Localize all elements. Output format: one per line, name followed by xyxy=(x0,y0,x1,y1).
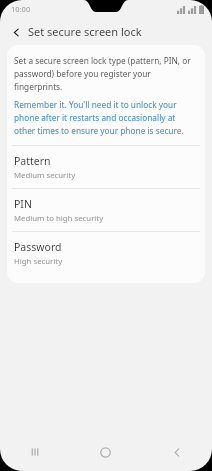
staticText: Pattern xyxy=(14,154,51,168)
staticText: Set a secure screen lock type (pattern, … xyxy=(14,55,198,92)
button[interactable]: Password xyxy=(7,232,205,274)
button[interactable]: Navigate up xyxy=(7,23,25,41)
button[interactable]: PIN xyxy=(7,189,205,231)
button[interactable]: Back xyxy=(141,433,212,471)
staticText: Medium security xyxy=(14,170,76,181)
button[interactable]: Recent apps xyxy=(0,433,70,471)
staticText: PIN xyxy=(14,197,32,211)
button[interactable]: Pattern xyxy=(7,146,205,188)
staticText: 10:00 xyxy=(11,4,31,14)
staticText: Set secure screen lock xyxy=(28,24,142,39)
staticText: High security xyxy=(14,256,63,267)
staticText: Password xyxy=(14,240,62,254)
staticText: Medium to high security xyxy=(14,213,104,224)
staticText: Remember it. You'll need it to unlock yo… xyxy=(14,99,198,136)
button[interactable]: Home xyxy=(70,433,141,471)
